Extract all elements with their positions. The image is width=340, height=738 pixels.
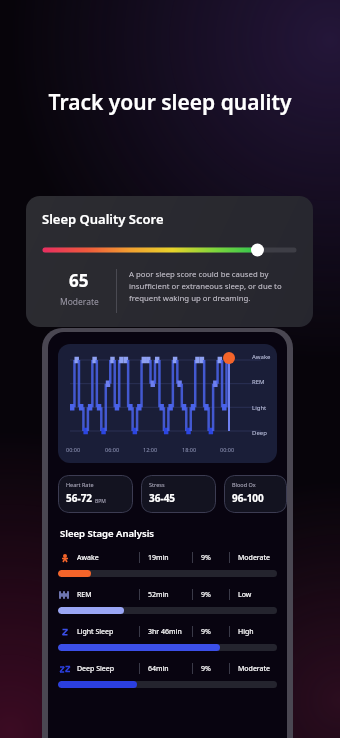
staticText: 9% [201, 590, 229, 600]
staticText: 19min [148, 553, 192, 563]
button[interactable]: Awake [58, 344, 277, 463]
staticText: REM [252, 378, 265, 386]
staticText: Awake [252, 353, 271, 361]
staticText: 36-45 [149, 491, 176, 505]
staticText: 12:00 [143, 446, 158, 453]
staticText: REM [77, 590, 139, 600]
staticText: BPM [95, 498, 106, 505]
staticText: Sleep Stage Analysis [60, 527, 155, 540]
staticText: Moderate [60, 296, 99, 308]
staticText: Blood Ox [232, 481, 256, 488]
button[interactable]: Deep Sleep [58, 663, 277, 688]
staticText: 65 [69, 269, 89, 292]
button[interactable]: Light Sleep [58, 626, 277, 651]
staticText: Sleep Quality Score [42, 210, 164, 228]
staticText: 9% [201, 553, 229, 563]
staticText: 96-100 [232, 491, 264, 505]
staticText: 56-72 [66, 491, 93, 505]
button[interactable]: Sleep Quality Score [26, 196, 313, 327]
staticText: Deep [252, 429, 267, 437]
button[interactable]: Awake [58, 552, 277, 577]
button[interactable]: Stress [141, 475, 216, 513]
staticText: 00:00 [220, 446, 235, 453]
staticText: Low [238, 590, 252, 600]
staticText: 00:00 [66, 446, 81, 453]
staticText: 18:00 [182, 446, 197, 453]
staticText: A poor sleep score could be caused by in… [129, 269, 297, 304]
staticText: 3hr 46min [148, 627, 192, 637]
staticText: 52min [148, 590, 192, 600]
staticText: Heart Rate [66, 481, 94, 488]
staticText: Stress [149, 481, 165, 488]
staticText: Track your sleep quality [20, 88, 320, 117]
staticText: High [238, 627, 254, 637]
button[interactable]: Blood Ox [224, 475, 287, 513]
staticText: 9% [201, 664, 229, 674]
staticText: Deep Sleep [77, 664, 139, 674]
staticText: Moderate [238, 553, 270, 563]
staticText: Awake [77, 553, 139, 563]
button[interactable]: REM [58, 589, 277, 614]
staticText: 06:00 [105, 446, 120, 453]
staticText: Light Sleep [77, 627, 139, 637]
staticText: Moderate [238, 664, 270, 674]
staticText: 64min [148, 664, 192, 674]
button[interactable]: Heart Rate [58, 475, 133, 513]
staticText: Light [252, 404, 267, 412]
staticText: 9% [201, 627, 229, 637]
